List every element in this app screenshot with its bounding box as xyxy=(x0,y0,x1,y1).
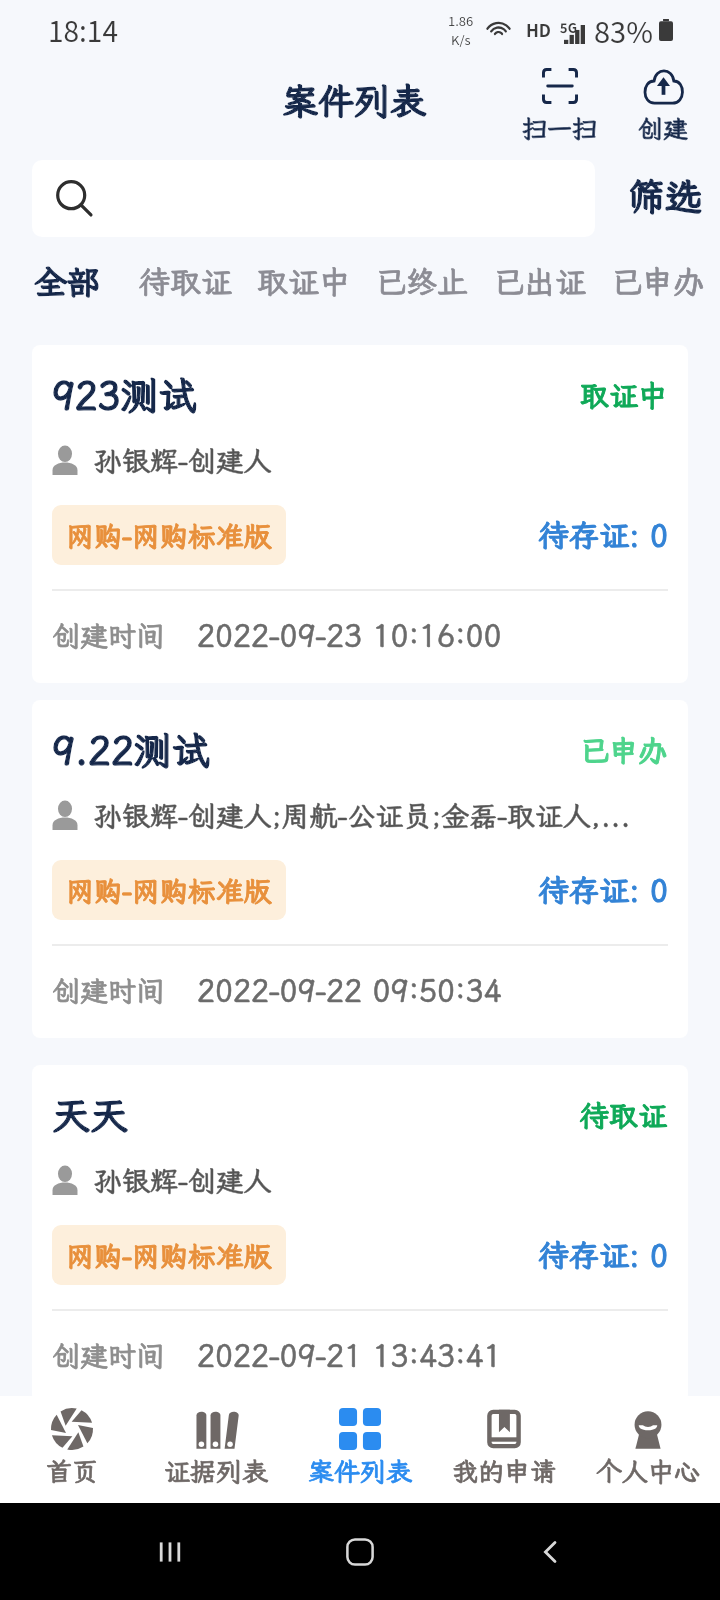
staticText: 网购-网购标准版 xyxy=(66,517,272,554)
staticText: 创建时间 xyxy=(52,617,165,654)
staticText: 0 xyxy=(650,515,668,555)
staticText: 已终止 xyxy=(375,261,468,302)
staticText: 0 xyxy=(650,1235,668,1275)
staticText: 待取证 xyxy=(580,1096,668,1134)
staticText: 取证中 xyxy=(257,261,350,302)
staticText: 0 xyxy=(650,870,668,910)
staticText: 案件列表 xyxy=(308,1454,413,1488)
staticText: 筛选 xyxy=(628,172,702,221)
staticText: 我的申请 xyxy=(452,1454,557,1488)
button[interactable]: 全部 xyxy=(8,243,126,319)
staticText: 网购-网购标准版 xyxy=(66,517,272,554)
button[interactable]: 取证中 xyxy=(244,243,362,319)
staticText: 2022-09-21 13:43:41 xyxy=(197,1335,502,1375)
staticText: 0 xyxy=(650,870,668,910)
staticText: 孙银辉-创建人 xyxy=(94,1162,272,1199)
staticText: 已申办 xyxy=(611,261,704,302)
staticText: 案件列表 xyxy=(282,77,427,124)
staticText: 已申办 xyxy=(611,261,704,302)
button[interactable]: 9.22测试 xyxy=(32,700,688,1038)
staticText: 首页 xyxy=(46,1454,99,1488)
staticText: HD xyxy=(526,17,552,42)
staticText: 天天 xyxy=(52,1090,129,1140)
staticText: 案件列表 xyxy=(308,1454,413,1488)
button[interactable]: 个人中心 xyxy=(576,1396,720,1488)
staticText: 创建时间 xyxy=(52,617,165,654)
staticText: 待取证 xyxy=(139,261,232,302)
staticText: 全部 xyxy=(34,260,100,303)
button[interactable]: 我的申请 xyxy=(432,1396,576,1488)
staticText: 天天 xyxy=(52,1090,129,1140)
button[interactable]: 案件列表 xyxy=(288,1396,432,1488)
staticText: 取证中 xyxy=(580,376,668,414)
staticText: 83% xyxy=(594,9,653,51)
staticText: 个人中心 xyxy=(596,1454,701,1488)
staticText: 2022-09-22 09:50:34 xyxy=(197,970,502,1010)
staticText: 个人中心 xyxy=(596,1454,701,1488)
staticText: 案件列表 xyxy=(282,77,427,124)
staticText: 0 xyxy=(650,1235,668,1275)
staticText: 待存证: xyxy=(539,515,650,555)
staticText: 待存证: xyxy=(539,515,650,555)
staticText: 网购-网购标准版 xyxy=(66,872,272,909)
staticText: 孙银辉-创建人 xyxy=(94,442,272,479)
staticText: 创建 xyxy=(638,112,689,145)
staticText: 已出证 xyxy=(493,261,586,302)
staticText: 网购-网购标准版 xyxy=(66,1237,272,1274)
staticText: 孙银辉-创建人 xyxy=(94,1162,272,1199)
staticText: 扫一扫 xyxy=(522,112,598,145)
button[interactable]: 首页 xyxy=(0,1396,144,1488)
staticText: 2022-09-23 10:16:00 xyxy=(197,615,502,655)
staticText: 923测试 xyxy=(52,370,197,420)
button[interactable]: Search xyxy=(32,160,595,237)
staticText: 18:14 xyxy=(48,10,118,51)
staticText: 网购-网购标准版 xyxy=(66,872,272,909)
button[interactable]: 待取证 xyxy=(126,243,244,319)
staticText: 孙银辉-创建人;周航-公证员;金磊-取证人,... xyxy=(94,797,631,834)
staticText: 已申办 xyxy=(580,731,668,769)
button[interactable]: 已申办 xyxy=(598,243,716,319)
staticText: 9.22测试 xyxy=(52,725,210,775)
staticText: 全部 xyxy=(34,260,100,303)
button[interactable]: 创建 xyxy=(622,64,705,147)
staticText: 已终止 xyxy=(375,261,468,302)
staticText: 待存证: xyxy=(539,870,650,910)
staticText: 待存证: xyxy=(539,1235,650,1275)
staticText: 创建时间 xyxy=(52,972,165,1009)
staticText: 创建 xyxy=(638,112,689,145)
button[interactable]: 筛选 xyxy=(612,170,720,227)
staticText: 1.86 xyxy=(448,11,474,30)
button[interactable]: 已终止 xyxy=(362,243,480,319)
staticText: 9.22测试 xyxy=(52,725,210,775)
staticText: 已出证 xyxy=(493,261,586,302)
staticText: 2022-09-21 13:43:41 xyxy=(197,1335,502,1375)
staticText: 待取证 xyxy=(580,1096,668,1134)
staticText: 2022-09-22 09:50:34 xyxy=(197,970,502,1010)
staticText: 待存证: xyxy=(539,870,650,910)
staticText: 孙银辉-创建人 xyxy=(94,442,272,479)
staticText: 证据列表 xyxy=(164,1454,269,1488)
staticText: 筛选 xyxy=(628,172,702,221)
staticText: 首页 xyxy=(46,1454,99,1488)
button[interactable]: 扫一扫 xyxy=(518,64,601,147)
staticText: K/s xyxy=(451,30,471,49)
staticText: 我的申请 xyxy=(452,1454,557,1488)
staticText: 取证中 xyxy=(580,376,668,414)
button[interactable]: 天天 xyxy=(32,1065,688,1403)
staticText: 5G xyxy=(560,18,577,37)
staticText: 0 xyxy=(650,515,668,555)
button[interactable]: 923测试 xyxy=(32,345,688,683)
staticText: 创建时间 xyxy=(52,1337,165,1374)
staticText: 孙银辉-创建人;周航-公证员;金磊-取证人,... xyxy=(94,797,631,834)
staticText: 待取证 xyxy=(139,261,232,302)
staticText: 已申办 xyxy=(580,731,668,769)
staticText: 创建时间 xyxy=(52,1337,165,1374)
button[interactable]: 证据列表 xyxy=(144,1396,288,1488)
staticText: 待存证: xyxy=(539,1235,650,1275)
button[interactable]: 已出证 xyxy=(480,243,598,319)
staticText: 2022-09-23 10:16:00 xyxy=(197,615,502,655)
staticText: 取证中 xyxy=(257,261,350,302)
staticText: 网购-网购标准版 xyxy=(66,1237,272,1274)
staticText: 证据列表 xyxy=(164,1454,269,1488)
staticText: 923测试 xyxy=(52,370,197,420)
